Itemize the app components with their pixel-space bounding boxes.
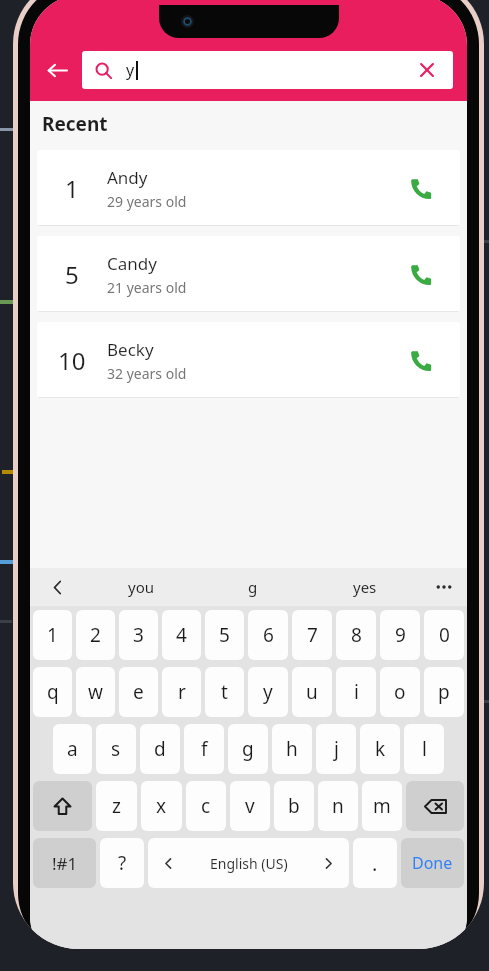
staticText: f [201,736,208,762]
staticText: b [288,793,300,819]
staticText: you [128,577,154,597]
staticText: 0 [439,622,450,648]
button[interactable]: 5 [37,236,460,312]
staticText: !#1 [52,852,78,875]
staticText: 6 [263,622,274,648]
staticText: z [112,793,121,819]
staticText: 1 [65,172,79,205]
button[interactable]: 7 [292,610,332,660]
staticText: 9 [395,622,406,648]
staticText: l [422,736,427,762]
button[interactable]: q [33,667,72,717]
staticText: p [438,679,450,705]
staticText: 5 [219,622,230,648]
staticText: i [354,679,359,705]
button[interactable]: n [318,781,358,831]
button[interactable]: r [162,667,201,717]
staticText: w [88,679,103,705]
staticText: . [372,850,378,877]
button[interactable]: 9 [380,610,420,660]
staticText: r [178,679,186,705]
staticText: y [126,59,135,81]
button[interactable]: i [336,667,376,717]
button[interactable]: k [360,724,400,774]
button[interactable]: s [96,724,136,774]
button[interactable]: Backspace [406,781,464,831]
staticText: m [373,793,391,819]
staticText: y [263,679,273,705]
button[interactable]: . [353,838,397,888]
button[interactable]: x [141,781,182,831]
button[interactable]: g [228,724,268,774]
staticText: Done [412,852,453,874]
button[interactable]: 5 [205,610,244,660]
button[interactable]: 1 [33,610,72,660]
staticText: j [334,736,339,762]
button[interactable]: 1 [37,150,460,226]
staticText: Candy [107,252,157,275]
staticText: 5 [65,258,79,291]
staticText: 2 [90,622,101,648]
button[interactable]: More options [421,568,467,606]
button[interactable]: 3 [119,610,158,660]
button[interactable]: y [248,667,288,717]
button[interactable]: 4 [162,610,201,660]
button[interactable]: h [272,724,312,774]
staticText: 32 years old [107,364,187,383]
button[interactable]: a [53,724,92,774]
staticText: v [245,793,255,819]
button[interactable]: Done [401,838,464,888]
button[interactable]: y [82,51,453,89]
button[interactable]: e [119,667,158,717]
staticText: g [248,577,258,597]
staticText: c [201,793,211,819]
staticText: Recent [42,111,108,137]
staticText: 29 years old [107,192,187,211]
button[interactable]: Previous suggestions [30,568,84,606]
button[interactable]: g [197,568,309,606]
staticText: o [394,679,406,705]
button[interactable]: j [316,724,356,774]
staticText: 7 [307,622,318,648]
button[interactable]: Shift [33,781,92,831]
button[interactable]: d [140,724,180,774]
button[interactable]: Back [36,49,78,91]
button[interactable]: you [84,568,197,606]
button[interactable]: Call Becky [400,339,442,381]
button[interactable]: u [292,667,332,717]
button[interactable]: o [380,667,420,717]
button[interactable]: yes [309,568,421,606]
button[interactable]: 0 [424,610,464,660]
button[interactable]: 8 [336,610,376,660]
button[interactable]: m [362,781,402,831]
button[interactable]: w [76,667,115,717]
button[interactable]: b [274,781,314,831]
button[interactable]: v [230,781,270,831]
staticText: 21 years old [107,278,187,297]
button[interactable]: Call Candy [400,253,442,295]
button[interactable]: !#1 [33,838,96,888]
button[interactable]: Space, English (US) [148,838,349,888]
button[interactable]: l [404,724,444,774]
button[interactable]: c [186,781,226,831]
button[interactable]: Clear search [414,57,440,83]
button[interactable]: z [96,781,137,831]
staticText: 3 [133,622,144,648]
button[interactable]: 2 [76,610,115,660]
button[interactable]: f [184,724,224,774]
staticText: q [47,679,59,705]
staticText: k [375,736,386,762]
button[interactable]: t [205,667,244,717]
staticText: g [242,736,254,762]
button[interactable]: ? [100,838,144,888]
button[interactable]: 6 [248,610,288,660]
staticText: u [306,679,318,705]
button[interactable]: p [424,667,464,717]
button[interactable]: 10 [37,322,460,398]
staticText: English (US) [210,854,288,873]
staticText: 1 [47,622,58,648]
button[interactable]: Call Andy [400,167,442,209]
staticText: yes [353,577,377,597]
staticText: a [67,736,78,762]
staticText: Becky [107,338,154,361]
